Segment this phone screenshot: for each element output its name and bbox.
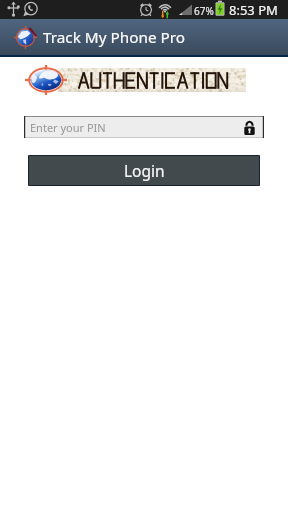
other: Secure PIN [244, 120, 255, 135]
staticText: Track My Phone Pro [43, 27, 186, 48]
staticText: 67% [194, 4, 214, 18]
staticText: Enter your PIN [30, 120, 106, 135]
staticText: 8:53 PM [229, 1, 278, 19]
staticText: Login [124, 160, 165, 181]
button[interactable]: Enter your PIN [24, 116, 264, 138]
button[interactable]: Login [28, 155, 260, 186]
